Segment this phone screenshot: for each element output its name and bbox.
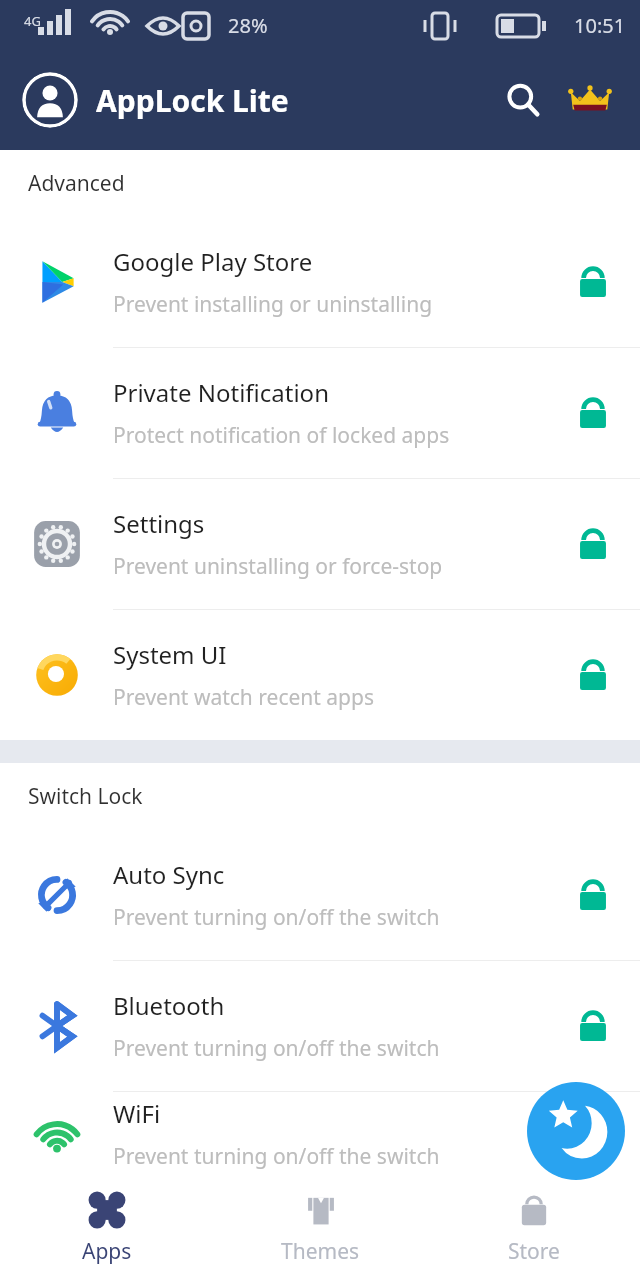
button[interactable]: Auto Sync [0,830,640,961]
staticText: 4G [24,12,41,30]
staticText: WiFi [113,1097,161,1130]
button[interactable]: Themes [214,1176,427,1280]
staticText: AppLock Lite [96,80,289,121]
button[interactable]: VIP [562,72,618,128]
button[interactable]: Google Play Store [0,217,640,348]
staticText: Private Notification [113,376,329,409]
staticText: Settings [113,507,205,540]
button[interactable]: Apps [0,1176,214,1280]
staticText: Prevent turning on/off the switch [113,1142,440,1171]
button[interactable]: WiFi [0,1092,640,1176]
staticText: Prevent turning on/off the switch [113,1034,440,1063]
staticText: Switch Lock [28,782,143,811]
staticText: Prevent installing or uninstalling [113,290,433,319]
button[interactable]: Private Notification [0,348,640,479]
staticText: Prevent turning on/off the switch [113,903,440,932]
staticText: Bluetooth [113,989,225,1022]
button[interactable]: Bluetooth [0,961,640,1092]
staticText: 10:51 [574,12,626,39]
staticText: Prevent watch recent apps [113,683,375,712]
button[interactable]: Store [427,1176,640,1280]
staticText: Apps [82,1237,132,1266]
staticText: System UI [113,638,227,671]
staticText: Protect notification of locked apps [113,421,450,450]
staticText: 28% [228,12,268,39]
staticText: Advanced [28,169,125,198]
button[interactable]: Search [496,73,550,127]
staticText: Themes [281,1237,360,1266]
button[interactable]: Night mode [527,1082,625,1180]
button[interactable]: Profile [22,72,78,128]
staticText: Auto Sync [113,858,225,891]
staticText: Prevent uninstalling or force-stop [113,552,443,581]
button[interactable]: Settings [0,479,640,610]
button[interactable]: System UI [0,610,640,740]
staticText: Google Play Store [113,245,313,278]
staticText: Store [508,1237,560,1266]
